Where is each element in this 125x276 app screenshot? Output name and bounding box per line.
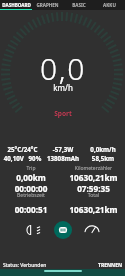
staticText: -57,3W [43, 145, 83, 153]
button[interactable]: GRAPHEN [32, 0, 63, 10]
button[interactable]: BASIC [63, 0, 94, 10]
staticText: 58,5km [83, 154, 123, 162]
staticText: AKKU [103, 2, 116, 8]
staticText: 13808mAh [43, 154, 83, 162]
staticText: km/h [53, 82, 73, 93]
staticText: Total [62, 192, 125, 199]
staticText: Status: Verbunden [3, 262, 47, 269]
staticText: Trip [0, 165, 62, 172]
button[interactable]: Speedometer [81, 219, 103, 241]
button[interactable]: DASHBOARD [0, 0, 32, 10]
staticText: 00:00:51 [0, 204, 62, 215]
staticText: 10630,21km [62, 204, 125, 215]
staticText: 07:59:35 [62, 183, 125, 194]
staticText: 25°C/24°C [2, 145, 43, 153]
staticText: DASHBOARD [2, 2, 31, 8]
staticText: 40,10V 90% [2, 154, 43, 162]
staticText: Sport [54, 109, 72, 118]
staticText: BASIC [72, 2, 86, 8]
button[interactable]: AKKU [94, 0, 125, 10]
staticText: 0,00km [0, 172, 62, 183]
staticText: GRAPHEN [36, 2, 59, 8]
staticText: 0,0 [40, 48, 86, 89]
button[interactable]: Headlight [23, 219, 45, 241]
staticText: Betriebszeit [0, 192, 62, 199]
staticText: TRENNEN [98, 262, 122, 269]
staticText: 10630,21km [62, 172, 125, 183]
staticText: Kilometerzähler [62, 165, 125, 172]
staticText: 00:00:00 [0, 183, 62, 194]
button[interactable]: Ride mode [54, 221, 72, 239]
staticText: 0,0km/h [83, 145, 123, 153]
